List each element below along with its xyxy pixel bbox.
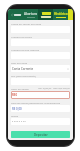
staticText: Abertura [24,12,37,16]
button[interactable]: Brand logo [38,9,53,20]
staticText: Número da Conta [11,35,32,38]
staticText: R$0 [12,93,18,97]
button[interactable]: Depositar [11,131,70,138]
button[interactable]: Conta Corrente [11,65,70,72]
button[interactable]: R$ 0,00 [11,105,70,112]
staticText: R$ 0,00 [12,107,22,111]
button[interactable]: Back [8,9,23,20]
button[interactable]: Histórico [53,9,68,20]
staticText: Nome do Titular da Conta [11,22,42,25]
button[interactable]: • • • • • • • • [11,118,70,125]
staticText: Depositar [34,133,48,137]
staticText: Tipo da Conta [11,61,28,64]
button[interactable]: More options [68,9,73,20]
staticText: Valor do Saque [11,87,29,90]
staticText: • • • • • • • • [12,120,26,124]
staticText: Número da sua Agência [11,48,40,51]
staticText: Histórico [54,12,68,16]
button[interactable]: Abertura [23,9,38,20]
staticText: Senha [11,114,19,117]
staticText: Taxa de Saque (definida por Transferênci… [11,101,70,104]
staticText: CPF (sem pontuação) [11,74,36,77]
button[interactable]: R$0 [11,91,70,99]
staticText: Conta Corrente [12,67,67,71]
staticText: Mín. R$50,00 Máx. R$5.000,00 [38,87,70,90]
